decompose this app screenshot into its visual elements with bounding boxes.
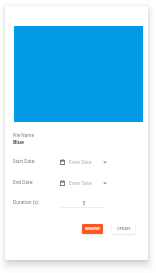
other: Pick date: [60, 159, 65, 165]
staticText: Blue: [13, 139, 25, 146]
staticText: File Name: [13, 132, 35, 138]
staticText: UPDATE: [117, 226, 131, 231]
staticText: 5: [62, 200, 106, 207]
button[interactable]: Pick date: [59, 156, 115, 168]
button[interactable]: UPDATE: [112, 224, 135, 234]
staticText: REMOVE: [85, 226, 100, 231]
button[interactable]: REMOVE: [82, 224, 103, 234]
staticText: End Date:: [13, 179, 34, 185]
staticText: Start Date:: [13, 158, 36, 164]
button[interactable]: 5: [61, 196, 105, 208]
staticText: Enter Date: [69, 159, 92, 165]
other: Pick date: [60, 180, 65, 186]
button[interactable]: Pick date: [59, 177, 115, 189]
staticText: Enter Date: [69, 180, 92, 186]
staticText: Duration (s):: [13, 199, 39, 205]
